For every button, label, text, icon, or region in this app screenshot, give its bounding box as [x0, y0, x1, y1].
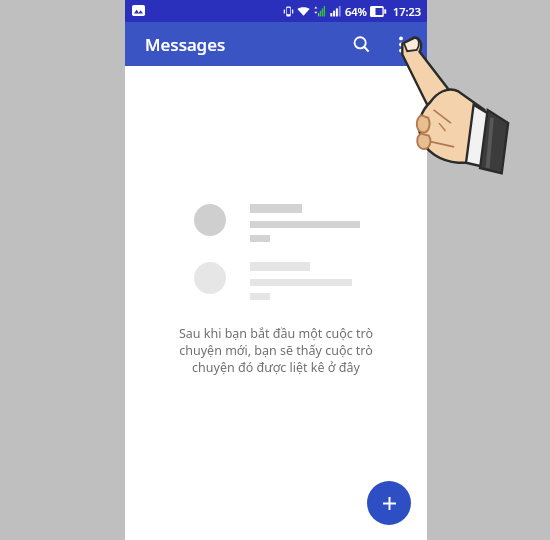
- staticText: Sau khi bạn bắt đầu một cuộc trò chuyện …: [139, 325, 413, 376]
- button[interactable]: Start new conversation: [367, 481, 411, 525]
- staticText: 17:23: [393, 4, 422, 19]
- button[interactable]: More options: [381, 24, 421, 64]
- staticText: 64%: [345, 4, 367, 19]
- button[interactable]: Search: [341, 24, 381, 64]
- staticText: Messages: [145, 33, 226, 56]
